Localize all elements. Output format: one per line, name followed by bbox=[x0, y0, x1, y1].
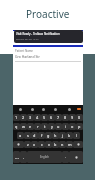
button[interactable]: Backspace bbox=[73, 141, 83, 148]
staticText: m bbox=[68, 142, 72, 147]
button[interactable]: k bbox=[66, 132, 73, 139]
staticText: 7 bbox=[57, 115, 60, 120]
button[interactable]: 9 bbox=[69, 114, 76, 121]
staticText: , bbox=[23, 155, 24, 159]
staticText: f bbox=[41, 133, 43, 138]
staticText: b bbox=[54, 142, 57, 147]
button[interactable]: 6 bbox=[48, 114, 55, 121]
button[interactable]: d bbox=[31, 132, 38, 139]
button[interactable]: v bbox=[45, 141, 52, 148]
staticText: 9 bbox=[71, 115, 74, 120]
staticText: s bbox=[27, 133, 29, 138]
button[interactable]: Visit Ready - Tedious Notification bbox=[14, 30, 83, 43]
button[interactable]: Shift bbox=[13, 141, 24, 148]
button[interactable]: 3 bbox=[27, 114, 34, 121]
staticText: h bbox=[54, 133, 57, 138]
button[interactable]: r bbox=[34, 123, 41, 130]
staticText: 4 bbox=[36, 115, 39, 120]
staticText: c bbox=[41, 142, 43, 147]
staticText: 2 bbox=[22, 115, 25, 120]
staticText: Gro Harland Str bbox=[15, 54, 40, 59]
staticText: 8 bbox=[64, 115, 67, 120]
staticText: v bbox=[48, 142, 50, 147]
staticText: w bbox=[22, 124, 25, 129]
button[interactable]: x bbox=[31, 141, 38, 148]
staticText: 0 bbox=[78, 115, 81, 120]
button[interactable]: w bbox=[20, 123, 27, 130]
staticText: k bbox=[68, 133, 71, 138]
button[interactable]: a bbox=[17, 132, 24, 139]
staticText: Proactive bbox=[26, 7, 70, 21]
button[interactable]: Keyboard tool bbox=[41, 107, 45, 111]
button[interactable]: Enter bbox=[69, 151, 83, 163]
button[interactable]: 2 bbox=[20, 114, 27, 121]
staticText: t bbox=[44, 124, 46, 129]
button[interactable]: n bbox=[59, 141, 66, 148]
staticText: i bbox=[65, 124, 66, 129]
button[interactable]: 4 bbox=[34, 114, 41, 121]
button[interactable]: j bbox=[59, 132, 66, 139]
button[interactable]: p bbox=[76, 123, 83, 130]
button[interactable]: c bbox=[38, 141, 45, 148]
button[interactable]: l bbox=[73, 132, 80, 139]
staticText: o bbox=[71, 124, 74, 129]
button[interactable]: Keyboard tool bbox=[53, 107, 57, 111]
button[interactable]: u bbox=[55, 123, 62, 130]
staticText: u bbox=[57, 124, 60, 129]
staticText: r bbox=[37, 124, 39, 129]
staticText: a bbox=[19, 133, 22, 138]
button[interactable]: s bbox=[24, 132, 31, 139]
button[interactable]: z bbox=[24, 141, 31, 148]
button[interactable]: y bbox=[48, 123, 55, 130]
staticText: Patient Name bbox=[15, 49, 33, 53]
button[interactable]: 7 bbox=[55, 114, 62, 121]
staticText: . bbox=[65, 155, 66, 159]
staticText: 5 bbox=[43, 115, 46, 120]
button[interactable]: o bbox=[69, 123, 76, 130]
button[interactable]: e bbox=[27, 123, 34, 130]
button[interactable]: 1 bbox=[13, 114, 20, 121]
staticText: x bbox=[33, 142, 36, 147]
staticText: d bbox=[33, 133, 36, 138]
staticText: 6 bbox=[50, 115, 53, 120]
button[interactable]: Keyboard tool bbox=[67, 107, 71, 111]
button[interactable]: Gboard bbox=[77, 108, 81, 110]
staticText: n bbox=[61, 142, 64, 147]
staticText: English bbox=[40, 155, 49, 159]
staticText: l bbox=[76, 133, 77, 138]
button[interactable]: . bbox=[62, 151, 69, 163]
staticText: z bbox=[27, 142, 29, 147]
staticText: 3 bbox=[29, 115, 32, 120]
button[interactable]: q bbox=[13, 123, 20, 130]
button[interactable]: g bbox=[45, 132, 52, 139]
button[interactable]: b bbox=[52, 141, 59, 148]
button[interactable]: Keyboard tool bbox=[30, 107, 34, 111]
staticText: Visit Ready - Tedious Notification bbox=[16, 32, 60, 36]
button[interactable]: f bbox=[38, 132, 45, 139]
button[interactable]: 0 bbox=[76, 114, 83, 121]
staticText: ?12 bbox=[15, 156, 19, 159]
staticText: Results will be 13:45 bbox=[16, 37, 39, 40]
button[interactable]: h bbox=[52, 132, 59, 139]
button[interactable]: m bbox=[66, 141, 73, 148]
button[interactable]: i bbox=[62, 123, 69, 130]
button[interactable]: t bbox=[41, 123, 48, 130]
staticText: g bbox=[47, 133, 50, 138]
button[interactable]: 8 bbox=[62, 114, 69, 121]
staticText: j bbox=[62, 133, 63, 138]
staticText: y bbox=[51, 124, 53, 129]
button[interactable]: 5 bbox=[41, 114, 48, 121]
button[interactable]: Space bbox=[27, 151, 62, 163]
button[interactable]: Keyboard tool bbox=[18, 107, 22, 111]
staticText: p bbox=[78, 124, 81, 129]
staticText: e bbox=[29, 124, 32, 129]
button[interactable]: , bbox=[20, 151, 27, 163]
button[interactable]: Symbols bbox=[13, 151, 20, 163]
staticText: q bbox=[15, 124, 18, 129]
staticText: 1 bbox=[15, 115, 18, 120]
